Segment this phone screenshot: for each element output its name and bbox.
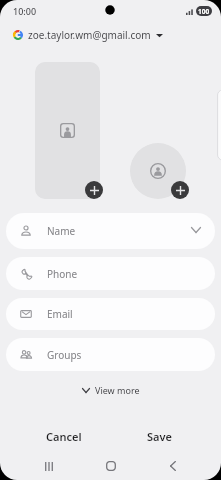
- staticText: Groups: [47, 348, 82, 362]
- staticText: Cancel: [46, 429, 82, 444]
- button[interactable]: Groups: [6, 338, 215, 371]
- button[interactable]: View more: [74, 381, 148, 399]
- button[interactable]: Save: [128, 423, 190, 449]
- button[interactable]: Phone: [6, 257, 215, 290]
- staticText: View more: [95, 384, 140, 396]
- button[interactable]: Cancel: [30, 423, 97, 449]
- button[interactable]: Add: [171, 181, 189, 199]
- button[interactable]: Add avatar: [130, 143, 186, 199]
- button[interactable]: zoe.taylor.wm@gmail.com: [0, 25, 163, 45]
- staticText: Email: [47, 307, 73, 321]
- staticText: zoe.taylor.wm@gmail.com: [28, 28, 151, 42]
- button[interactable]: Name: [6, 213, 215, 249]
- button[interactable]: Recents: [38, 456, 59, 476]
- staticText: 100: [198, 7, 210, 16]
- staticText: Name: [47, 224, 76, 238]
- button[interactable]: Email: [6, 298, 215, 330]
- button[interactable]: Add photo: [35, 62, 100, 199]
- button[interactable]: Back: [162, 456, 183, 476]
- button[interactable]: Add: [85, 181, 103, 199]
- staticText: Phone: [47, 267, 78, 281]
- staticText: 10:00: [13, 5, 37, 17]
- staticText: Save: [147, 429, 172, 444]
- button[interactable]: Home: [100, 456, 121, 476]
